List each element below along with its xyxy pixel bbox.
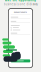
staticText: Request a quote	[14, 11, 27, 13]
button[interactable]: Submit request	[11, 59, 30, 62]
staticText: Take the opportunity	[4, 0, 36, 2]
staticText: business is one click away	[3, 3, 37, 6]
